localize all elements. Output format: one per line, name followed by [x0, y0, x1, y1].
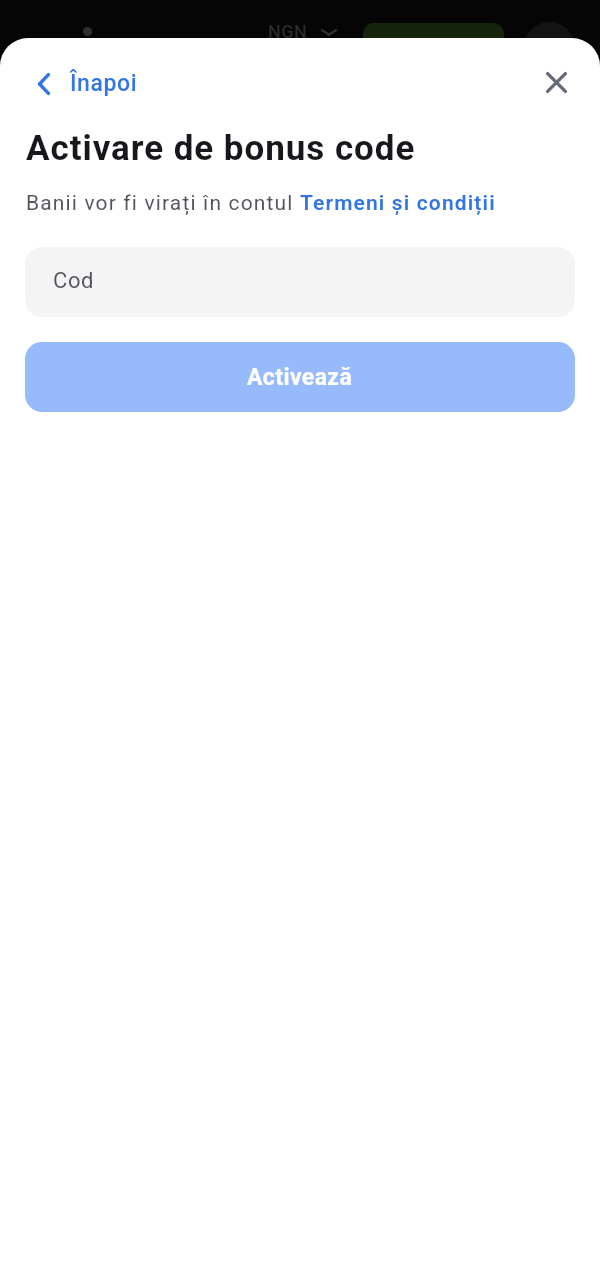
staticText: Banii vor fi virați în contul Termeni și…: [26, 191, 496, 216]
button[interactable]: Activează: [25, 342, 575, 412]
staticText: Activează: [247, 364, 353, 391]
staticText: Înapoi: [70, 70, 138, 97]
button[interactable]: Cod: [25, 247, 575, 317]
button[interactable]: Înapoi: [34, 64, 142, 103]
staticText: Activare de bonus code: [26, 128, 416, 169]
staticText: Cod: [53, 268, 95, 294]
button[interactable]: Close: [536, 62, 576, 102]
staticText: NGN: [268, 21, 308, 42]
